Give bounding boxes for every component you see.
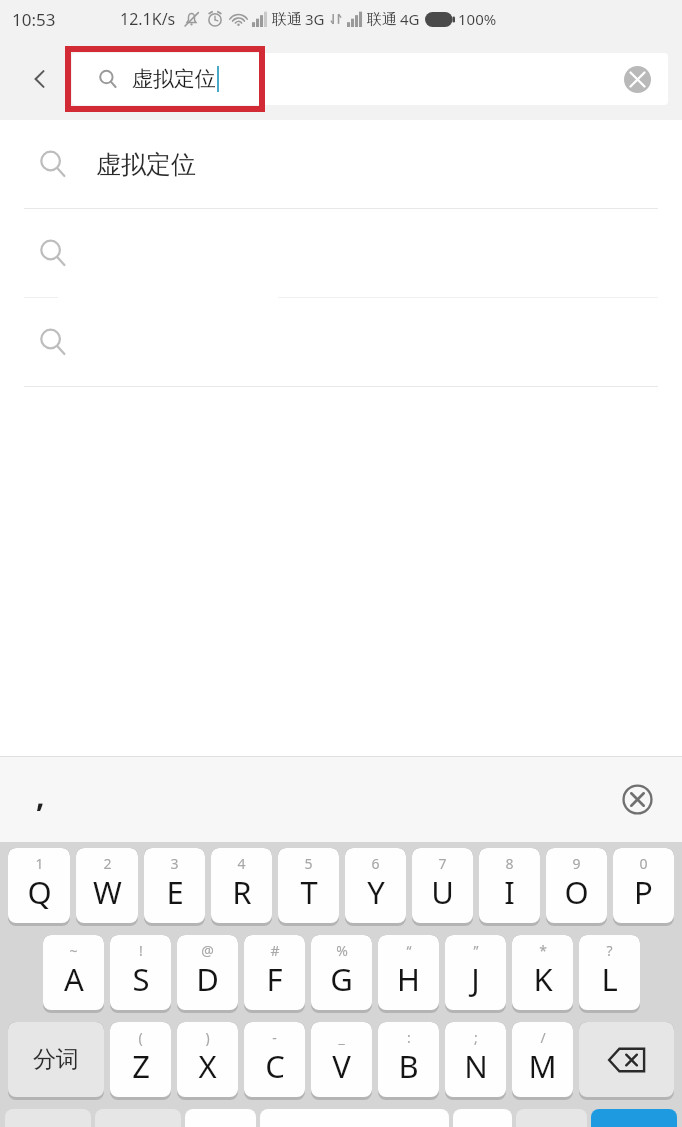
button[interactable]: _ (311, 1022, 372, 1097)
staticText: X (198, 1045, 217, 1087)
staticText: 5 (304, 854, 313, 873)
button[interactable]: ” (445, 935, 506, 1010)
button[interactable]: 5 (278, 848, 339, 923)
staticText: P (634, 871, 653, 913)
button[interactable]: ) (177, 1022, 238, 1097)
button[interactable]: “ (378, 935, 439, 1010)
button[interactable]: # (244, 935, 305, 1010)
button[interactable] (0, 209, 682, 297)
staticText: F (266, 958, 283, 1000)
staticText: I (504, 871, 515, 913)
staticText: O (564, 871, 589, 913)
staticText: D (196, 958, 219, 1000)
staticText: - (272, 1028, 277, 1047)
button[interactable]: : (378, 1022, 439, 1097)
staticText: 3 (170, 854, 179, 873)
staticText: ” (473, 941, 479, 960)
button[interactable] (591, 1109, 677, 1127)
staticText: 100% (458, 9, 497, 29)
button[interactable]: ? (579, 935, 640, 1010)
button[interactable]: 0 (613, 848, 674, 923)
staticText: # (270, 941, 280, 960)
button[interactable]: 1 (8, 848, 70, 923)
staticText: U (431, 871, 454, 913)
staticText: * (539, 941, 547, 960)
button[interactable] (453, 1109, 512, 1127)
staticText: 虚拟定位 (132, 66, 216, 92)
button[interactable]: 9 (546, 848, 607, 923)
staticText: 7 (438, 854, 447, 873)
button[interactable]: ( (110, 1022, 171, 1097)
button[interactable]: ! (110, 935, 171, 1010)
staticText: C (265, 1045, 285, 1087)
staticText: J (471, 958, 480, 1000)
staticText: / (540, 1028, 546, 1047)
button[interactable]: 虚拟定位 (72, 53, 668, 105)
staticText: 4 (237, 854, 246, 873)
staticText: : (407, 1028, 411, 1047)
staticText: A (64, 958, 84, 1000)
staticText: Y (367, 871, 385, 913)
staticText: L (601, 958, 618, 1000)
staticText: E (166, 871, 184, 913)
button[interactable]: , (36, 775, 45, 816)
staticText: % (336, 941, 348, 960)
button[interactable]: / (512, 1022, 573, 1097)
button[interactable]: Backspace (579, 1022, 674, 1097)
button[interactable]: Close keyboard (617, 779, 657, 819)
button[interactable]: 7 (412, 848, 473, 923)
staticText: K (533, 958, 553, 1000)
staticText: 4G (400, 9, 420, 29)
staticText: R (232, 871, 252, 913)
staticText: 分词 (33, 1045, 79, 1074)
staticText: 0 (639, 854, 648, 873)
button[interactable]: ; (445, 1022, 506, 1097)
staticText: G (330, 958, 353, 1000)
staticText: Q (27, 871, 52, 913)
button[interactable]: Clear text (620, 62, 654, 96)
button[interactable]: 4 (211, 848, 272, 923)
staticText: ( (138, 1028, 143, 1047)
staticText: N (464, 1045, 488, 1087)
staticText: 8 (505, 854, 514, 873)
button[interactable]: Back (16, 55, 64, 103)
staticText: ? (606, 941, 613, 960)
button[interactable]: 3 (144, 848, 205, 923)
staticText: 联通 (272, 10, 302, 29)
button[interactable] (185, 1109, 256, 1127)
staticText: W (93, 871, 122, 913)
button[interactable]: 分词 (8, 1022, 104, 1097)
button[interactable]: ~ (43, 935, 104, 1010)
button[interactable]: @ (177, 935, 238, 1010)
staticText: Z (132, 1045, 150, 1087)
button[interactable]: 8 (479, 848, 540, 923)
staticText: 1 (35, 854, 44, 873)
button[interactable] (0, 298, 682, 386)
staticText: 12.1K/s (120, 8, 176, 30)
staticText: ; (474, 1028, 478, 1047)
button[interactable]: % (311, 935, 372, 1010)
button[interactable]: - (244, 1022, 305, 1097)
staticText: 虚拟定位 (96, 149, 196, 180)
button[interactable] (260, 1109, 449, 1127)
button[interactable]: 6 (345, 848, 406, 923)
staticText: “ (406, 941, 412, 960)
button[interactable]: * (512, 935, 573, 1010)
staticText: 联通 (367, 10, 397, 29)
staticText: ~ (69, 941, 78, 960)
staticText: _ (338, 1028, 345, 1047)
staticText: B (398, 1045, 419, 1087)
staticText: V (332, 1045, 351, 1087)
staticText: M (528, 1045, 557, 1087)
staticText: ! (139, 941, 143, 960)
button[interactable]: 虚拟定位 (0, 120, 682, 208)
staticText: S (132, 958, 150, 1000)
staticText: 9 (572, 854, 581, 873)
staticText: 2 (103, 854, 112, 873)
staticText: 3G (305, 9, 325, 29)
staticText: ) (205, 1028, 210, 1047)
button[interactable]: 2 (76, 848, 138, 923)
